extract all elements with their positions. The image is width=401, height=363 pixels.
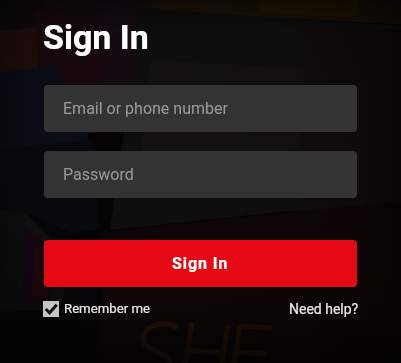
button[interactable]: Sign In [44, 240, 357, 287]
button[interactable]: Password [44, 151, 357, 198]
staticText: Password [63, 165, 134, 184]
staticText: Remember me [64, 301, 150, 316]
button[interactable]: Email or phone number [44, 85, 357, 132]
staticText: Sign In [43, 17, 149, 57]
button[interactable]: Remember me [43, 301, 150, 317]
staticText: Email or phone number [63, 99, 228, 118]
staticText: Need help? [289, 301, 359, 317]
staticText: Sign In [172, 254, 229, 273]
button[interactable]: Need help? [289, 301, 359, 317]
